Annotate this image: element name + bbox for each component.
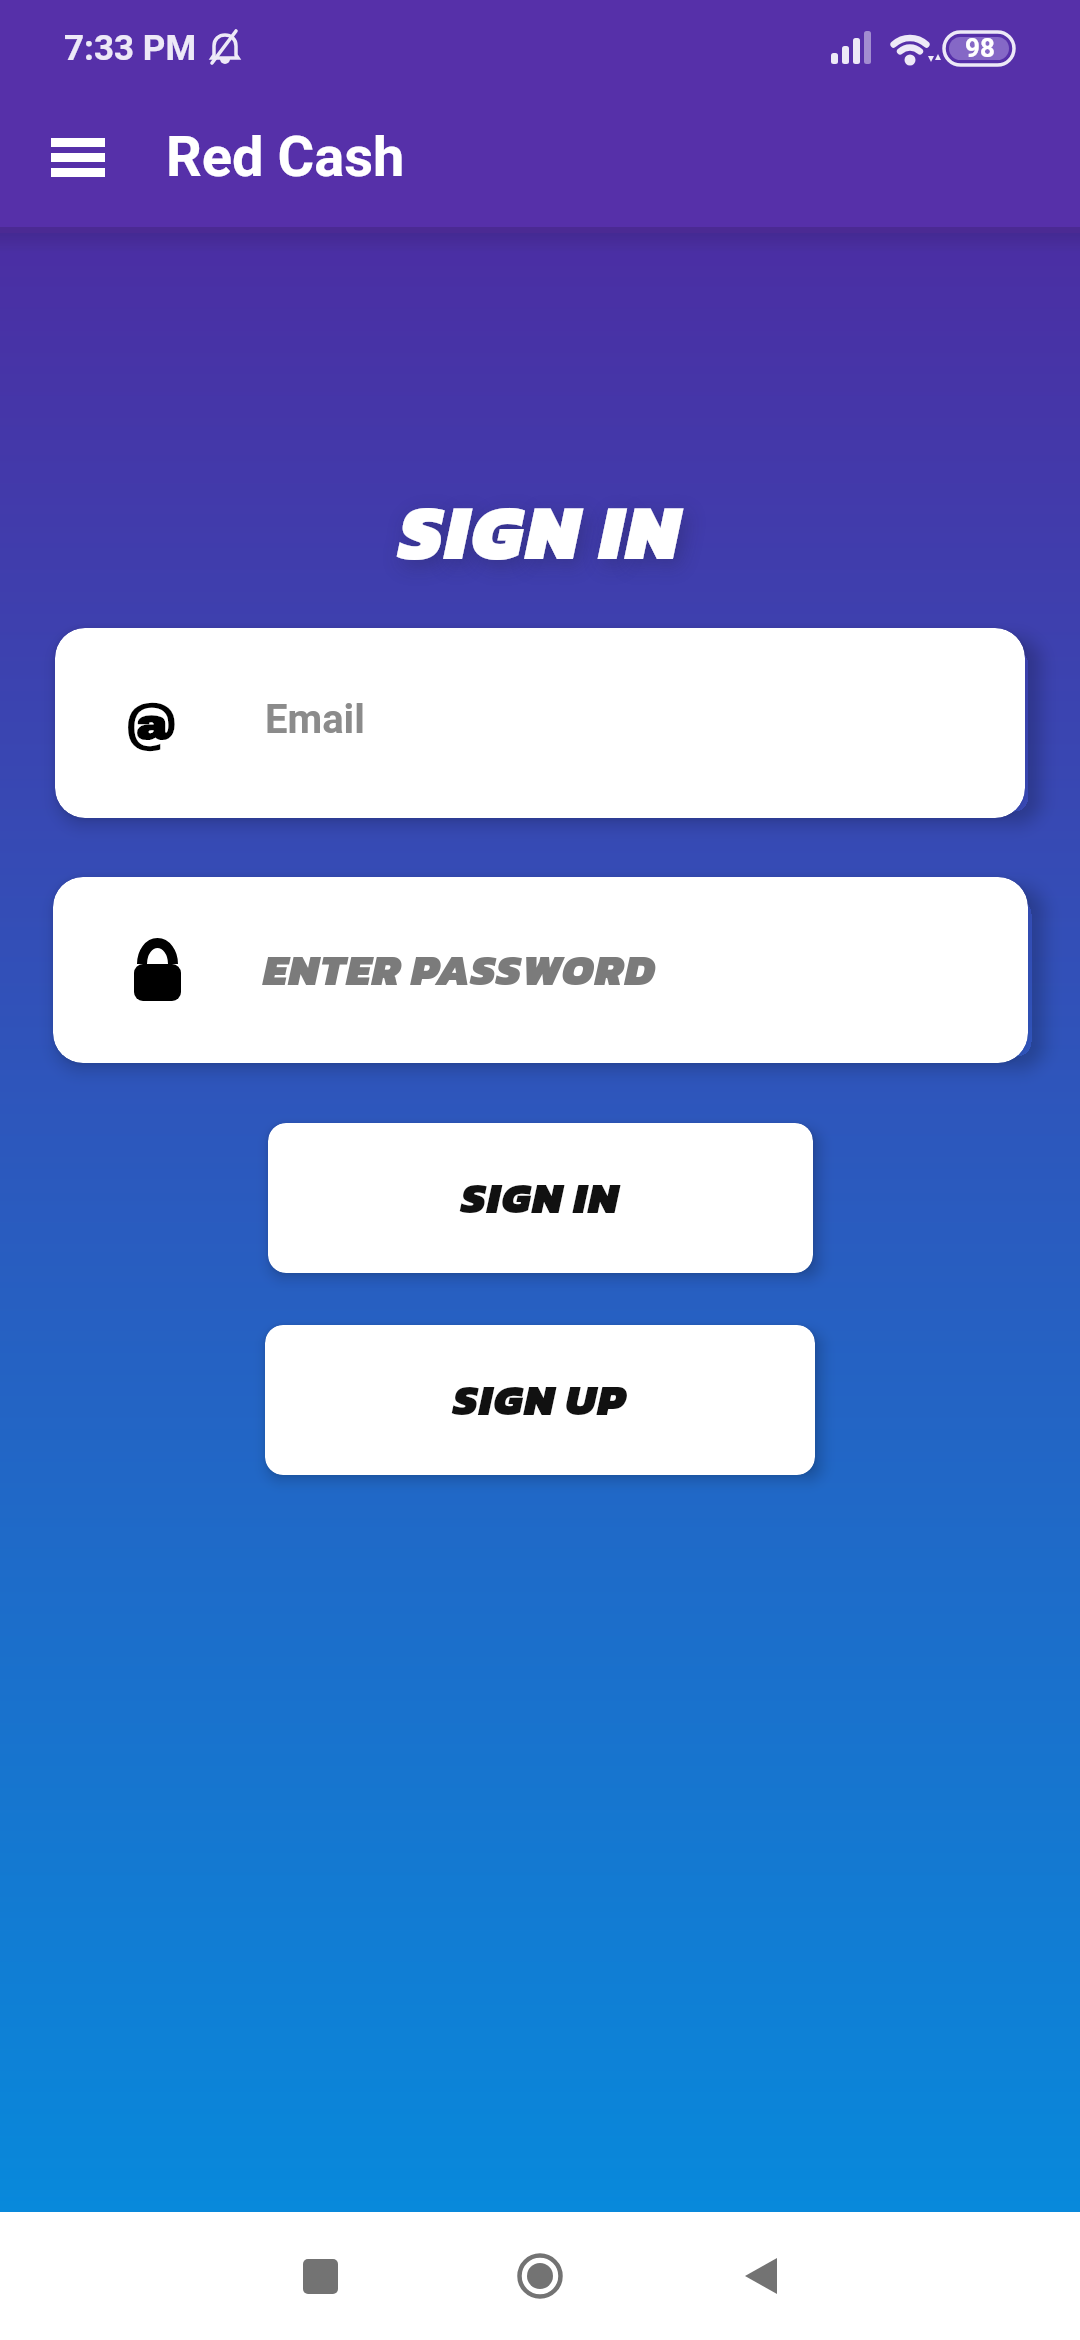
staticText: 7:33 PM xyxy=(64,28,197,69)
staticText: 98 xyxy=(965,33,995,63)
button[interactable]: SIGN UP xyxy=(265,1325,815,1475)
button[interactable] xyxy=(272,2228,368,2324)
button[interactable]: ENTER PASSWORD xyxy=(53,877,1028,1063)
staticText: Email xyxy=(265,696,365,743)
staticText: ENTER PASSWORD xyxy=(263,937,657,1003)
button[interactable] xyxy=(492,2228,588,2324)
button[interactable] xyxy=(713,2228,809,2324)
button[interactable]: SIGN IN xyxy=(268,1123,813,1273)
staticText: SIGN UP xyxy=(453,1367,627,1433)
staticText: SIGN IN xyxy=(461,1165,620,1231)
button[interactable] xyxy=(30,110,126,206)
staticText: SIGN IN xyxy=(399,473,682,590)
staticText: Red Cash xyxy=(166,124,405,190)
staticText: @ xyxy=(128,694,175,753)
button[interactable]: @ xyxy=(55,628,1025,818)
